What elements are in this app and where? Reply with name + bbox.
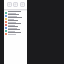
button[interactable] — [4, 29, 27, 32]
button[interactable] — [4, 17, 27, 20]
button[interactable] — [4, 26, 27, 29]
button[interactable]: Notes — [20, 2, 25, 7]
button[interactable] — [4, 20, 27, 23]
button[interactable]: Calendar — [13, 2, 18, 7]
button[interactable] — [4, 32, 27, 35]
button[interactable]: Messages — [7, 2, 12, 7]
button[interactable] — [4, 23, 27, 26]
button[interactable] — [4, 11, 27, 14]
button[interactable] — [4, 14, 27, 17]
